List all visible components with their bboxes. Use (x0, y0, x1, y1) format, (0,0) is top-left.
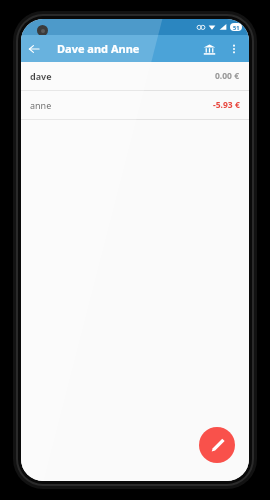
staticText: 51 (233, 24, 240, 31)
button[interactable]: anne (21, 91, 249, 119)
button[interactable]: Back (21, 36, 47, 62)
staticText: Dave and Anne (57, 41, 140, 56)
button[interactable]: Bank (196, 36, 222, 62)
staticText: -5.93 € (213, 99, 240, 111)
button[interactable]: dave (21, 62, 249, 90)
staticText: dave (30, 70, 52, 82)
staticText: 0.00 € (215, 70, 240, 82)
button[interactable]: More options (222, 37, 246, 61)
button[interactable]: Edit (199, 427, 235, 463)
staticText: anne (30, 99, 52, 111)
